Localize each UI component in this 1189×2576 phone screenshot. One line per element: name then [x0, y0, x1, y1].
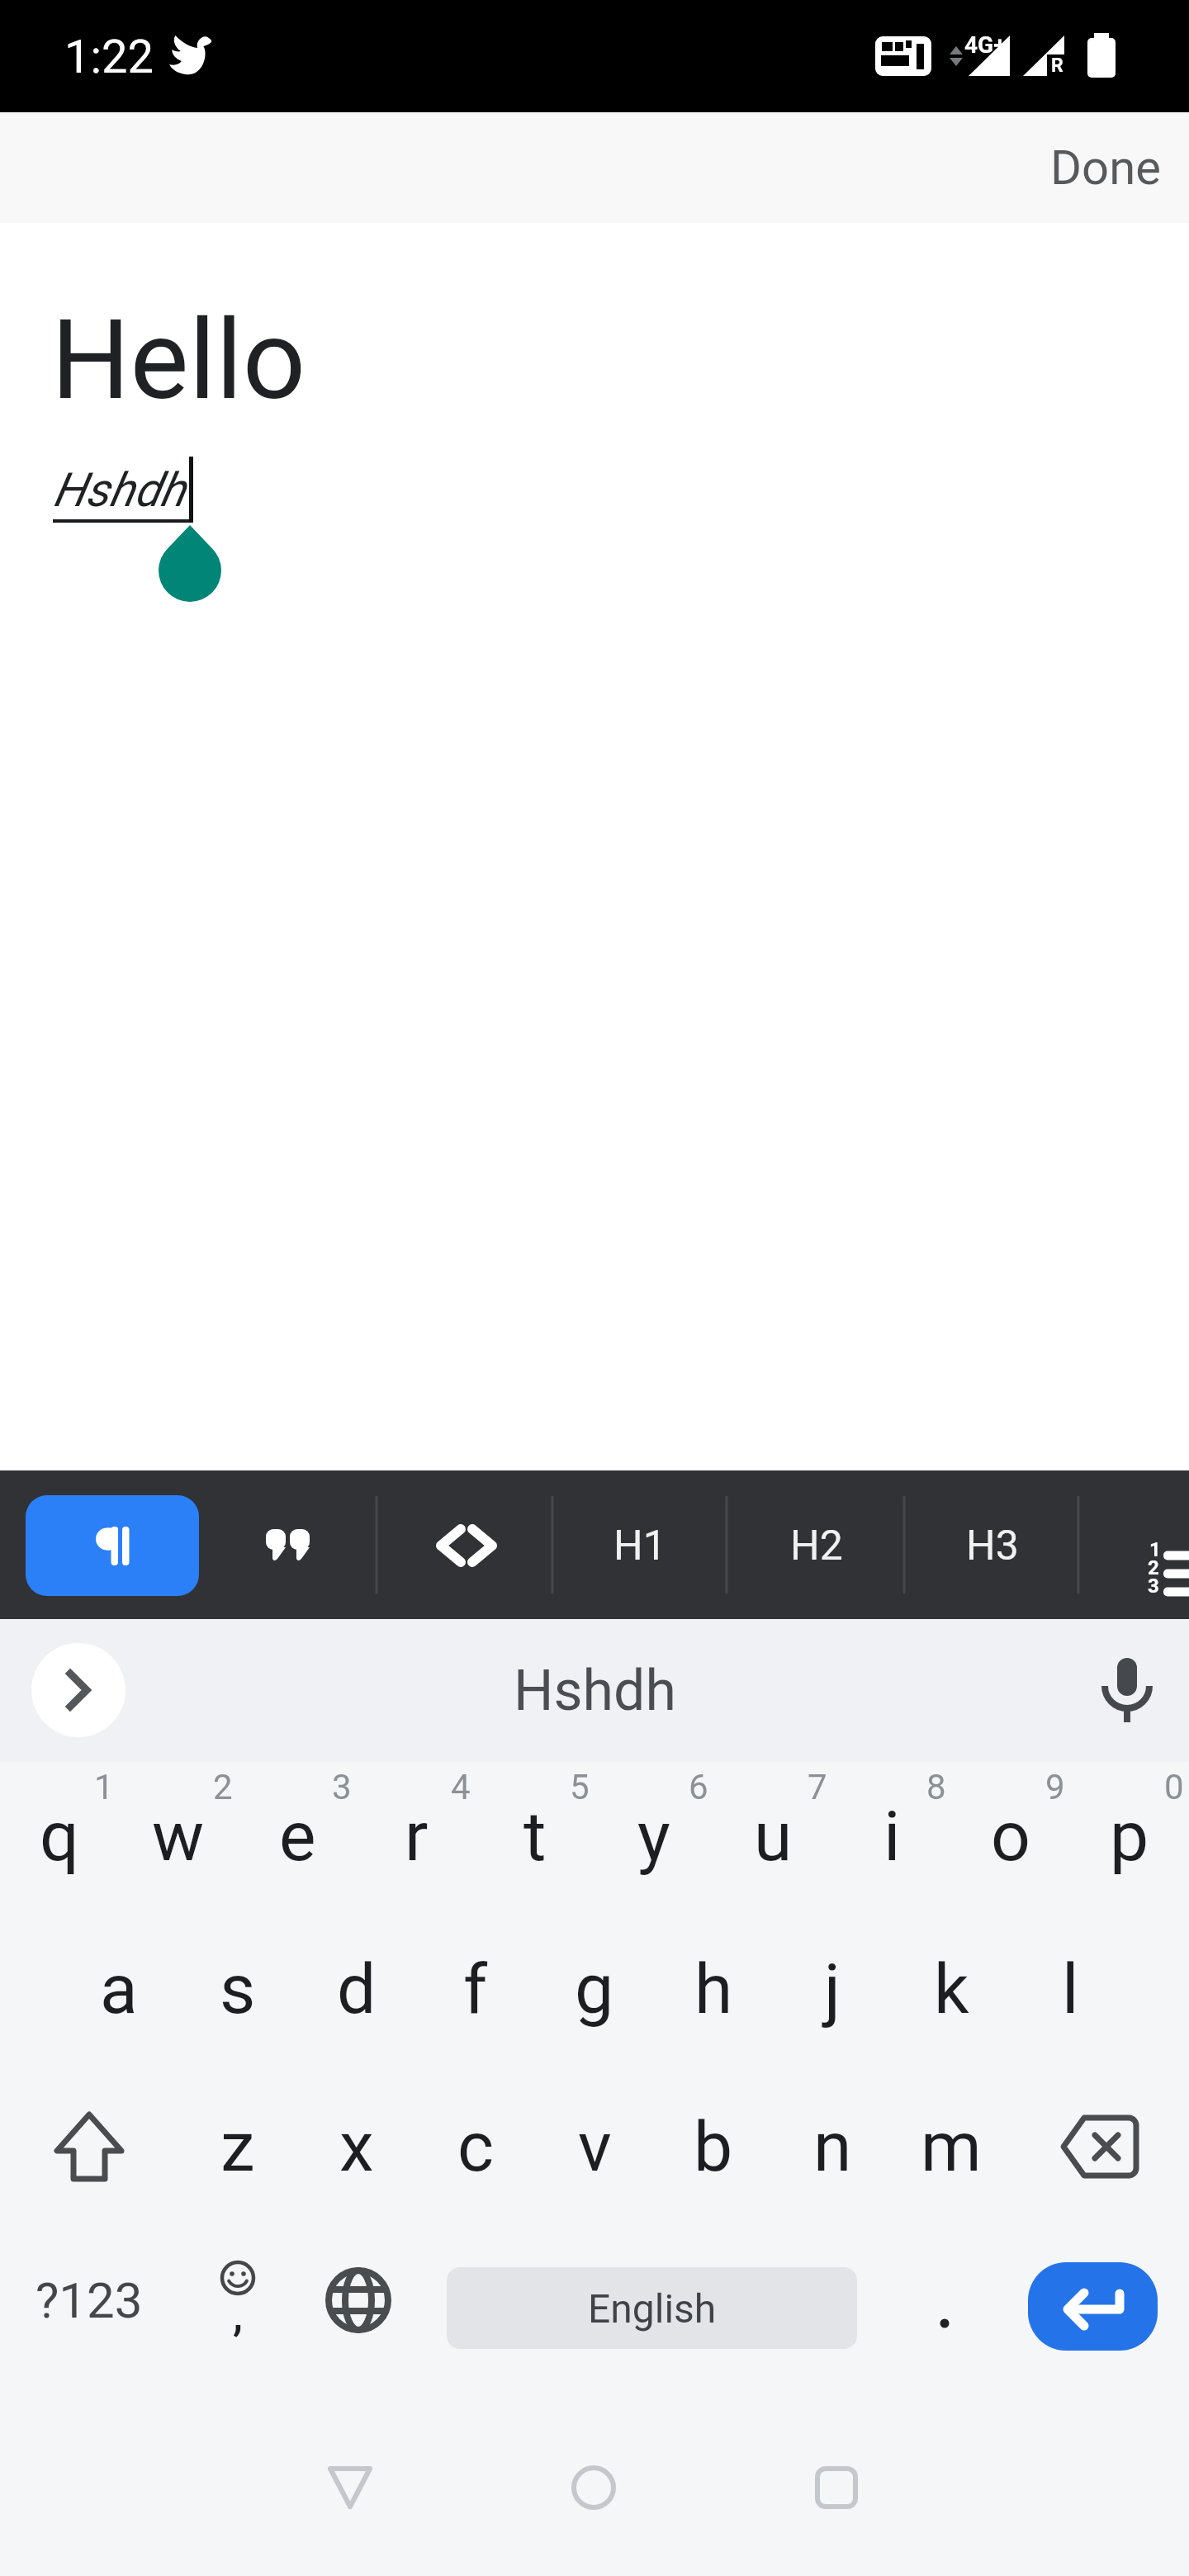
button[interactable]: f	[416, 1919, 535, 2059]
button[interactable]: u	[713, 1766, 832, 1906]
staticText: e	[279, 1796, 316, 1877]
staticText: w	[152, 1796, 205, 1877]
button[interactable]	[417, 1495, 516, 1596]
button[interactable]: m	[892, 2076, 1011, 2217]
staticText: d	[337, 1949, 377, 2029]
button[interactable]: i	[832, 1766, 951, 1906]
button[interactable]	[238, 1495, 337, 1596]
button[interactable]: English	[447, 2267, 857, 2349]
button[interactable]: l	[1011, 1919, 1130, 2059]
button[interactable]: b	[654, 2076, 773, 2217]
staticText: 1	[94, 1767, 114, 1807]
staticText: t	[523, 1796, 547, 1877]
button[interactable]: k	[892, 1919, 1011, 2059]
button[interactable]	[31, 1643, 126, 1737]
staticText: ,	[233, 2289, 243, 2341]
staticText: k	[934, 1949, 969, 2029]
button[interactable]: Done	[1050, 112, 1189, 223]
button[interactable]: r	[357, 1766, 476, 1906]
staticText: 4	[451, 1767, 471, 1807]
staticText: Done	[1050, 140, 1161, 196]
staticText: v	[578, 2106, 612, 2187]
button[interactable]: H2	[734, 1495, 899, 1596]
staticText: 9	[1045, 1767, 1065, 1807]
staticText: o	[991, 1796, 1030, 1877]
button[interactable]: v	[535, 2076, 654, 2217]
staticText: 0	[1164, 1767, 1184, 1807]
button[interactable]: e	[238, 1766, 357, 1906]
staticText: R	[1051, 54, 1063, 77]
button[interactable]: 1	[1136, 1495, 1189, 1596]
staticText: 3	[332, 1767, 352, 1807]
staticText: z	[220, 2106, 255, 2187]
button[interactable]	[1028, 2262, 1158, 2351]
staticText: H2	[790, 1522, 843, 1570]
button[interactable]	[297, 2237, 416, 2378]
staticText: ?123	[36, 2271, 143, 2329]
staticText: 5	[570, 1767, 590, 1807]
staticText: r	[405, 1796, 429, 1877]
staticText: i	[883, 1796, 901, 1877]
button[interactable]	[892, 2237, 1011, 2378]
staticText: f	[463, 1949, 488, 2029]
button[interactable]: q	[0, 1766, 119, 1906]
button[interactable]	[777, 2428, 896, 2547]
button[interactable]: s	[178, 1919, 297, 2059]
button[interactable]: h	[654, 1919, 773, 2059]
button[interactable]: Hshdh	[0, 1619, 1189, 1762]
staticText: b	[694, 2106, 733, 2187]
staticText: 7	[808, 1767, 827, 1807]
button[interactable]: p	[1070, 1766, 1189, 1906]
staticText: English	[588, 2285, 717, 2332]
button[interactable]: H3	[910, 1495, 1075, 1596]
staticText: 1:22	[64, 30, 154, 84]
button[interactable]	[1011, 2076, 1189, 2217]
button[interactable]: x	[297, 2076, 416, 2217]
staticText: g	[575, 1949, 614, 2029]
button[interactable]: o	[951, 1766, 1070, 1906]
staticText: s	[220, 1949, 256, 2029]
staticText: Hshdh	[514, 1658, 676, 1724]
staticText: h	[694, 1949, 733, 2029]
button[interactable]: g	[535, 1919, 654, 2059]
button[interactable]: w	[119, 1766, 238, 1906]
staticText: l	[1062, 1949, 1079, 2029]
button[interactable]: j	[773, 1919, 892, 2059]
button[interactable]: n	[773, 2076, 892, 2217]
staticText: 2	[1148, 1556, 1159, 1579]
staticText: 4G+	[964, 31, 1007, 59]
staticText: m	[921, 2106, 982, 2187]
staticText: H3	[966, 1522, 1019, 1570]
staticText: 3	[1148, 1574, 1159, 1598]
staticText: u	[754, 1796, 793, 1877]
button[interactable]: H1	[557, 1495, 722, 1596]
button[interactable]: z	[178, 2076, 297, 2217]
staticText: n	[813, 2106, 852, 2187]
staticText: Hello	[51, 296, 306, 425]
staticText: Hshdh	[53, 462, 186, 518]
button[interactable]: a	[59, 1919, 178, 2059]
staticText: c	[457, 2106, 494, 2187]
button[interactable]	[534, 2428, 653, 2547]
staticText: H1	[613, 1522, 666, 1570]
button[interactable]: d	[297, 1919, 416, 2059]
button[interactable]	[26, 1495, 199, 1596]
button[interactable]	[291, 2428, 410, 2547]
button[interactable]	[0, 2076, 178, 2217]
button[interactable]: y	[594, 1766, 713, 1906]
button[interactable]: ?123	[0, 2237, 178, 2378]
staticText: j	[824, 1949, 841, 2029]
staticText: y	[637, 1796, 670, 1877]
staticText: 2	[213, 1767, 233, 1807]
button[interactable]: t	[476, 1766, 594, 1906]
button[interactable]: ,	[178, 2237, 297, 2378]
staticText: 8	[926, 1767, 946, 1807]
button[interactable]	[1073, 1636, 1181, 1745]
button[interactable]: c	[416, 2076, 535, 2217]
staticText: x	[339, 2106, 374, 2187]
staticText: 1	[1149, 1538, 1161, 1561]
staticText: p	[1110, 1796, 1149, 1877]
staticText: 6	[689, 1767, 708, 1807]
staticText: q	[40, 1796, 79, 1877]
staticText: a	[100, 1949, 138, 2029]
